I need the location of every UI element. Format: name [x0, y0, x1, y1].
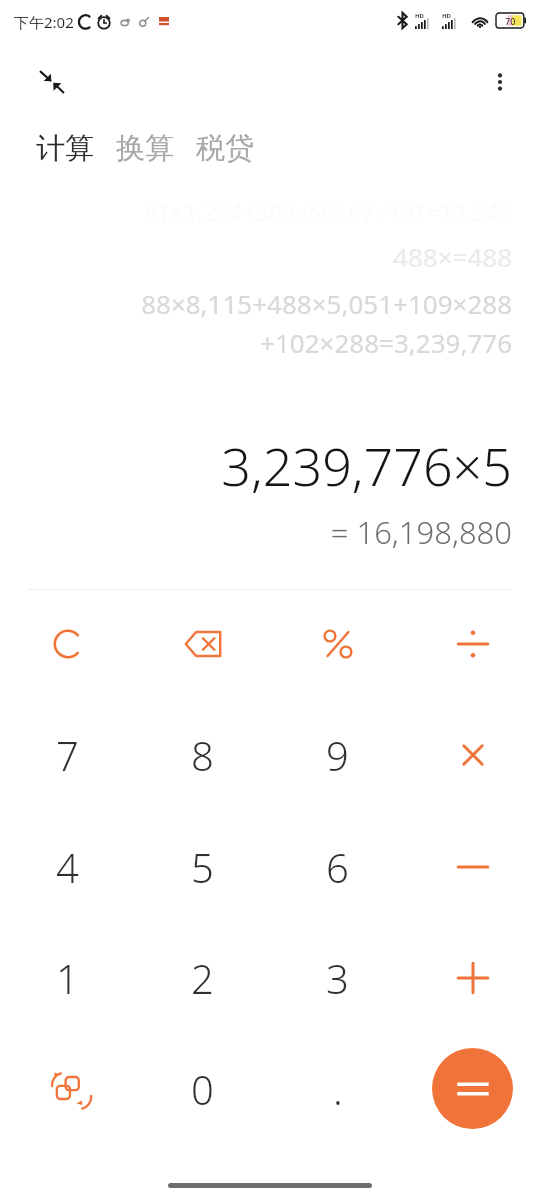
- staticText: 税贷: [196, 130, 254, 167]
- staticText: HD: [415, 12, 424, 20]
- button[interactable]: Percent: [270, 588, 405, 699]
- button[interactable]: 9: [270, 699, 405, 810]
- button[interactable]: Equals: [432, 1048, 513, 1129]
- staticText: 5: [191, 840, 214, 894]
- staticText: .: [333, 1062, 343, 1116]
- button[interactable]: Plus: [405, 922, 540, 1033]
- button[interactable]: 7: [0, 699, 135, 810]
- button[interactable]: Clear: [0, 588, 135, 699]
- button[interactable]: 税贷: [194, 126, 256, 171]
- staticText: = 16,198,880: [28, 511, 512, 553]
- button[interactable]: 换算: [114, 126, 176, 171]
- staticText: 6: [326, 840, 349, 894]
- staticText: 9: [326, 728, 349, 782]
- button[interactable]: Multiply: [405, 699, 540, 810]
- staticText: 3,239,776×5: [28, 430, 512, 501]
- staticText: 88×8,115+488×5,051+109×288: [28, 286, 512, 321]
- button[interactable]: 3: [270, 922, 405, 1033]
- button[interactable]: 1: [0, 922, 135, 1033]
- staticText: 0: [191, 1062, 214, 1116]
- staticText: 488×=488: [28, 239, 512, 274]
- staticText: 下午2:02: [14, 12, 74, 32]
- button[interactable]: Collapse: [26, 56, 78, 108]
- button[interactable]: 0: [135, 1033, 270, 1144]
- staticText: 70: [505, 15, 516, 27]
- staticText: 换算: [116, 130, 174, 167]
- staticText: 3: [326, 951, 349, 1005]
- button[interactable]: 计算: [34, 126, 96, 171]
- button[interactable]: 8: [135, 699, 270, 810]
- button[interactable]: Minus: [405, 811, 540, 922]
- button[interactable]: 2: [135, 922, 270, 1033]
- staticText: 7: [56, 728, 79, 782]
- staticText: 计算: [36, 130, 94, 167]
- button[interactable]: Backspace: [135, 588, 270, 699]
- button[interactable]: 4: [0, 811, 135, 922]
- staticText: 8: [191, 728, 214, 782]
- button[interactable]: Divide: [405, 588, 540, 699]
- staticText: HD: [442, 12, 451, 20]
- button[interactable]: 6: [270, 811, 405, 922]
- button[interactable]: More options: [474, 56, 526, 108]
- button[interactable]: .: [270, 1033, 405, 1144]
- staticText: 2: [191, 951, 214, 1005]
- staticText: 4: [56, 840, 79, 894]
- staticText: +102×288=3,239,776: [28, 325, 512, 360]
- button[interactable]: 5: [135, 811, 270, 922]
- staticText: 1: [56, 951, 79, 1005]
- button[interactable]: Unit conversion: [0, 1033, 135, 1144]
